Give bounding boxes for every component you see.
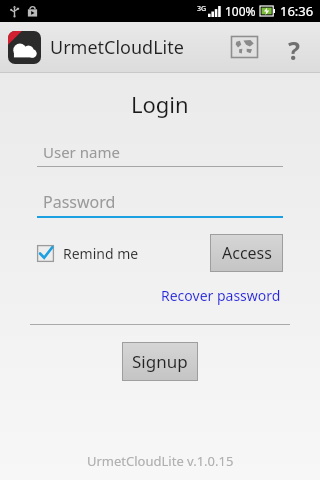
staticText: Login [131, 89, 189, 119]
button[interactable]: Help [280, 33, 308, 61]
staticText: Signup [132, 350, 188, 373]
staticText: 100% [225, 3, 256, 19]
staticText: Recover password [161, 286, 281, 305]
button[interactable]: Remind me [37, 244, 139, 263]
staticText: 3G [197, 4, 207, 14]
button[interactable]: Recover password [161, 286, 281, 305]
staticText: 16:36 [280, 2, 314, 20]
staticText: UrmetCloudLite v.1.0.15 [87, 452, 234, 470]
staticText: ? [288, 33, 300, 61]
staticText: User name [43, 142, 120, 162]
staticText: Password [43, 191, 116, 213]
staticText: Access [222, 242, 272, 264]
button[interactable]: Signup [122, 342, 198, 381]
staticText: UrmetCloudLite [50, 35, 184, 60]
button[interactable]: Access [210, 234, 283, 272]
button[interactable]: Password [37, 191, 283, 218]
button[interactable]: User name [37, 141, 283, 167]
staticText: Remind me [63, 244, 139, 263]
button[interactable]: Language [231, 36, 258, 58]
